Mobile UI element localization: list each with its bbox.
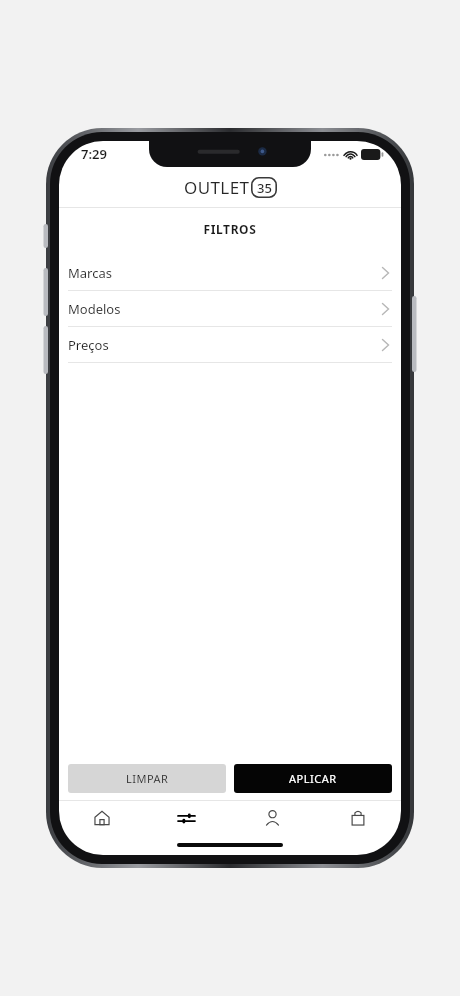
button[interactable]: APLICAR <box>234 764 392 793</box>
staticText: APLICAR <box>289 771 337 786</box>
staticText: FILTROS <box>59 221 401 237</box>
button[interactable]: Modelos <box>59 291 401 327</box>
staticText: LIMPAR <box>126 771 169 786</box>
button[interactable]: Account <box>229 801 315 835</box>
staticText: Preços <box>68 336 109 354</box>
staticText: 35 <box>257 179 272 197</box>
button[interactable]: Marcas <box>59 255 401 291</box>
button[interactable]: Cart <box>315 801 401 835</box>
button[interactable]: LIMPAR <box>68 764 226 793</box>
button[interactable]: Preços <box>59 327 401 363</box>
staticText: Marcas <box>68 264 112 282</box>
staticText: OUTLET <box>184 176 250 199</box>
button[interactable]: Home <box>59 801 144 835</box>
staticText: 7:29 <box>81 145 107 163</box>
button[interactable]: Filters <box>144 801 229 835</box>
staticText: Modelos <box>68 300 121 318</box>
